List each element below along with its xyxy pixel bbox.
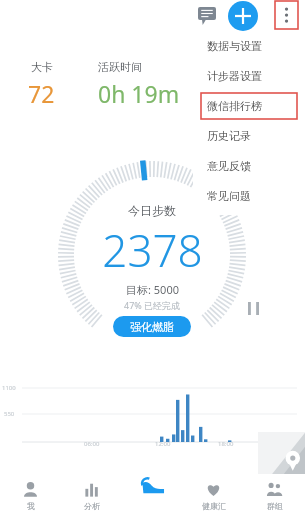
staticText: 强化燃脂	[130, 320, 174, 334]
staticText: 意见反馈	[207, 159, 251, 173]
button[interactable]: 计步器设置	[207, 61, 305, 91]
staticText: 计步器设置	[207, 69, 262, 83]
button[interactable]: More options	[274, 0, 299, 30]
button[interactable]: 健康汇	[183, 474, 244, 519]
staticText: 目标: 5000	[126, 282, 179, 297]
staticText: 健康汇	[202, 501, 226, 511]
staticText: 18:00	[218, 440, 234, 448]
staticText: 550	[4, 410, 15, 418]
staticText: 历史记录	[207, 129, 251, 143]
button[interactable]: 我	[0, 474, 61, 519]
button[interactable]: 常见问题	[207, 181, 305, 211]
staticText: 微信排行榜	[207, 99, 262, 113]
staticText: 47% 已经完成	[124, 299, 181, 311]
staticText: 分析	[84, 501, 100, 511]
button[interactable]: 分析	[61, 474, 122, 519]
button[interactable]: Activity	[133, 466, 173, 506]
staticText: 常见问题	[207, 189, 251, 203]
button[interactable]: Pause	[240, 295, 266, 321]
button[interactable]: 历史记录	[207, 121, 305, 151]
button[interactable]: 群组	[244, 474, 305, 519]
button[interactable]: 意见反馈	[207, 151, 305, 181]
button[interactable]: Messages	[193, 2, 221, 30]
staticText: 06:00	[84, 440, 100, 448]
staticText: 今日步数	[128, 203, 176, 218]
staticText: 我	[27, 501, 35, 511]
staticText: 群组	[267, 501, 283, 511]
staticText: 12:00	[155, 440, 171, 448]
button[interactable]: 强化燃脂	[113, 316, 191, 337]
button[interactable]: 微信排行榜	[207, 91, 305, 121]
button[interactable]: Add	[228, 1, 258, 31]
staticText: 72	[28, 78, 55, 109]
staticText: 2378	[102, 220, 203, 280]
staticText: 活跃时间	[98, 60, 142, 74]
button[interactable]: Map	[258, 432, 305, 474]
button[interactable]: 数据与设置	[207, 31, 305, 61]
staticText: 1100	[2, 384, 16, 392]
staticText: 数据与设置	[207, 39, 262, 53]
staticText: 大卡	[31, 60, 53, 74]
staticText: 0h 19m	[98, 78, 180, 109]
